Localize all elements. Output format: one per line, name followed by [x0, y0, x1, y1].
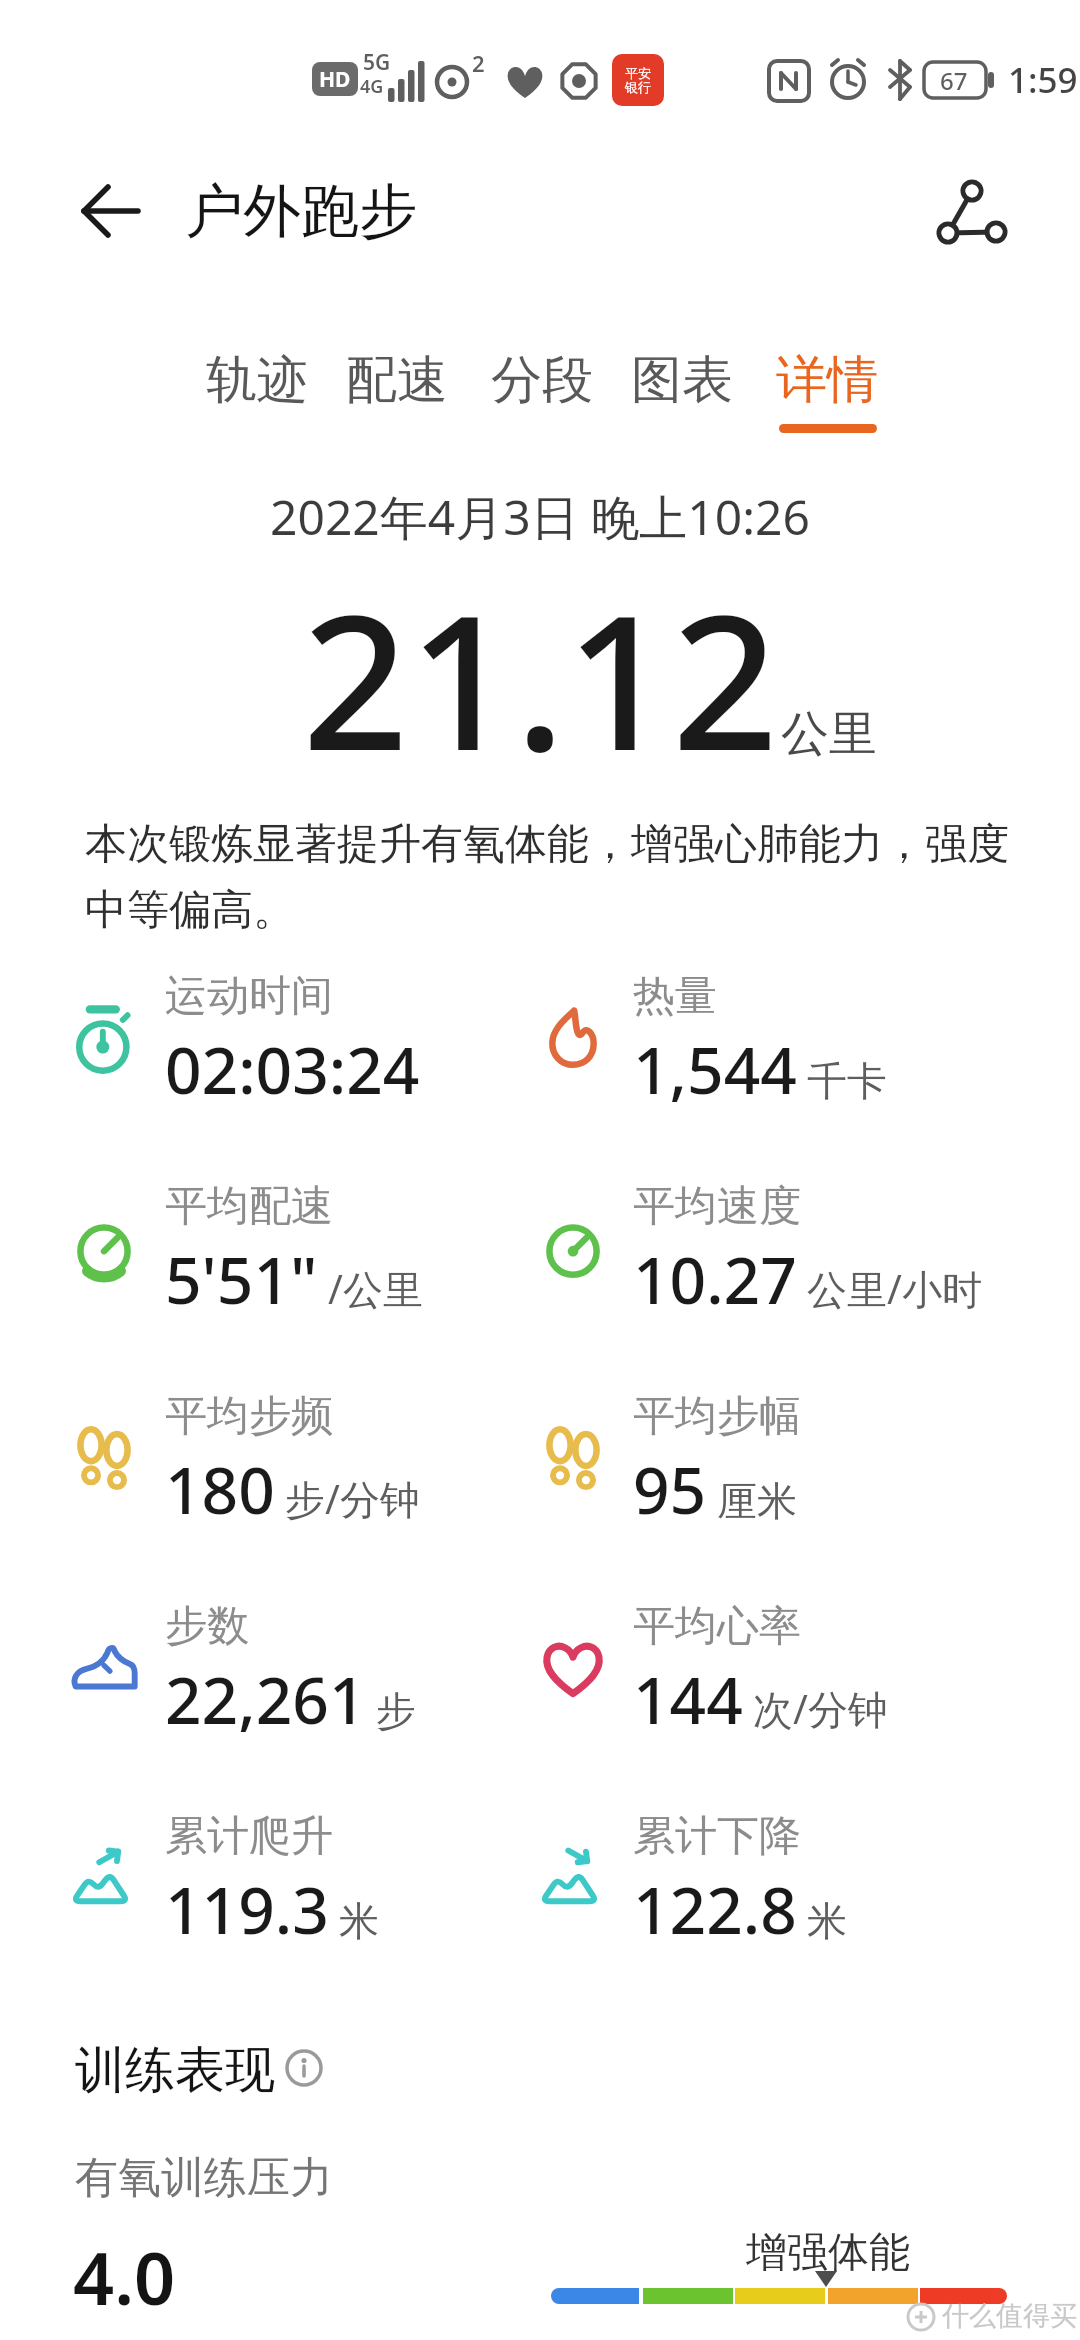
staticText: 千卡	[807, 1056, 887, 1106]
staticText: 180	[165, 1446, 275, 1533]
staticText: 训练表现	[75, 2039, 275, 2102]
staticText: 详情	[776, 348, 878, 412]
staticText: 02:03:24	[165, 1026, 420, 1113]
staticText: 1:59	[1008, 56, 1078, 104]
staticText: 平均心率	[633, 1600, 801, 1653]
staticText: 步/分钟	[285, 1471, 420, 1526]
staticText: 5'51"	[165, 1236, 318, 1323]
staticText: 分段	[491, 348, 593, 412]
staticText: 平均配速	[165, 1180, 333, 1233]
staticText: 米	[339, 1896, 379, 1946]
staticText: 配速	[346, 348, 448, 412]
staticText: 有氧训练压力	[75, 2151, 333, 2205]
staticText: 运动时间	[165, 970, 333, 1023]
staticText: 67	[940, 64, 968, 97]
staticText: 119.3	[165, 1866, 329, 1953]
staticText: 122.8	[633, 1866, 797, 1953]
staticText: 厘米	[717, 1476, 797, 1526]
staticText: 步	[376, 1686, 416, 1736]
staticText: 热量	[633, 970, 717, 1023]
staticText: 2022年4月3日 晚上10:26	[270, 484, 810, 550]
staticText: 户外跑步	[185, 175, 417, 248]
staticText: 米	[807, 1896, 847, 1946]
staticText: 22,261	[165, 1656, 366, 1743]
staticText: 平均步频	[165, 1390, 333, 1443]
staticText: 10.27	[633, 1236, 797, 1323]
staticText: 什么值得买	[942, 2299, 1077, 2333]
staticText: 本次锻炼显著提升有氧体能，增强心肺能力，强度中等偏高。	[85, 818, 1035, 937]
staticText: 95	[633, 1446, 707, 1533]
staticText: 公里/小时	[807, 1261, 982, 1316]
staticText: 1,544	[633, 1026, 797, 1113]
staticText: 增强体能	[746, 2227, 910, 2279]
staticText: HD	[319, 65, 351, 94]
staticText: 平安 银行	[625, 65, 651, 96]
staticText: 公里	[781, 704, 877, 764]
staticText: 步数	[165, 1600, 249, 1653]
button[interactable]	[282, 2046, 326, 2090]
staticText: 21.12	[302, 551, 779, 804]
staticText: 4G	[360, 74, 384, 99]
staticText: 图表	[631, 348, 733, 412]
staticText: /公里	[328, 1261, 423, 1316]
button[interactable]	[70, 170, 150, 250]
staticText: 累计爬升	[165, 1810, 333, 1863]
staticText: 平均速度	[633, 1180, 801, 1233]
staticText: 轨迹	[206, 348, 308, 412]
staticText: 平均步幅	[633, 1390, 801, 1443]
staticText: 5G	[363, 48, 391, 77]
staticText: 4.0	[73, 2228, 176, 2326]
staticText: 次/分钟	[753, 1681, 888, 1736]
staticText: 累计下降	[633, 1810, 801, 1863]
button[interactable]	[925, 165, 1020, 260]
staticText: 2	[472, 48, 485, 78]
staticText: 144	[633, 1656, 743, 1743]
